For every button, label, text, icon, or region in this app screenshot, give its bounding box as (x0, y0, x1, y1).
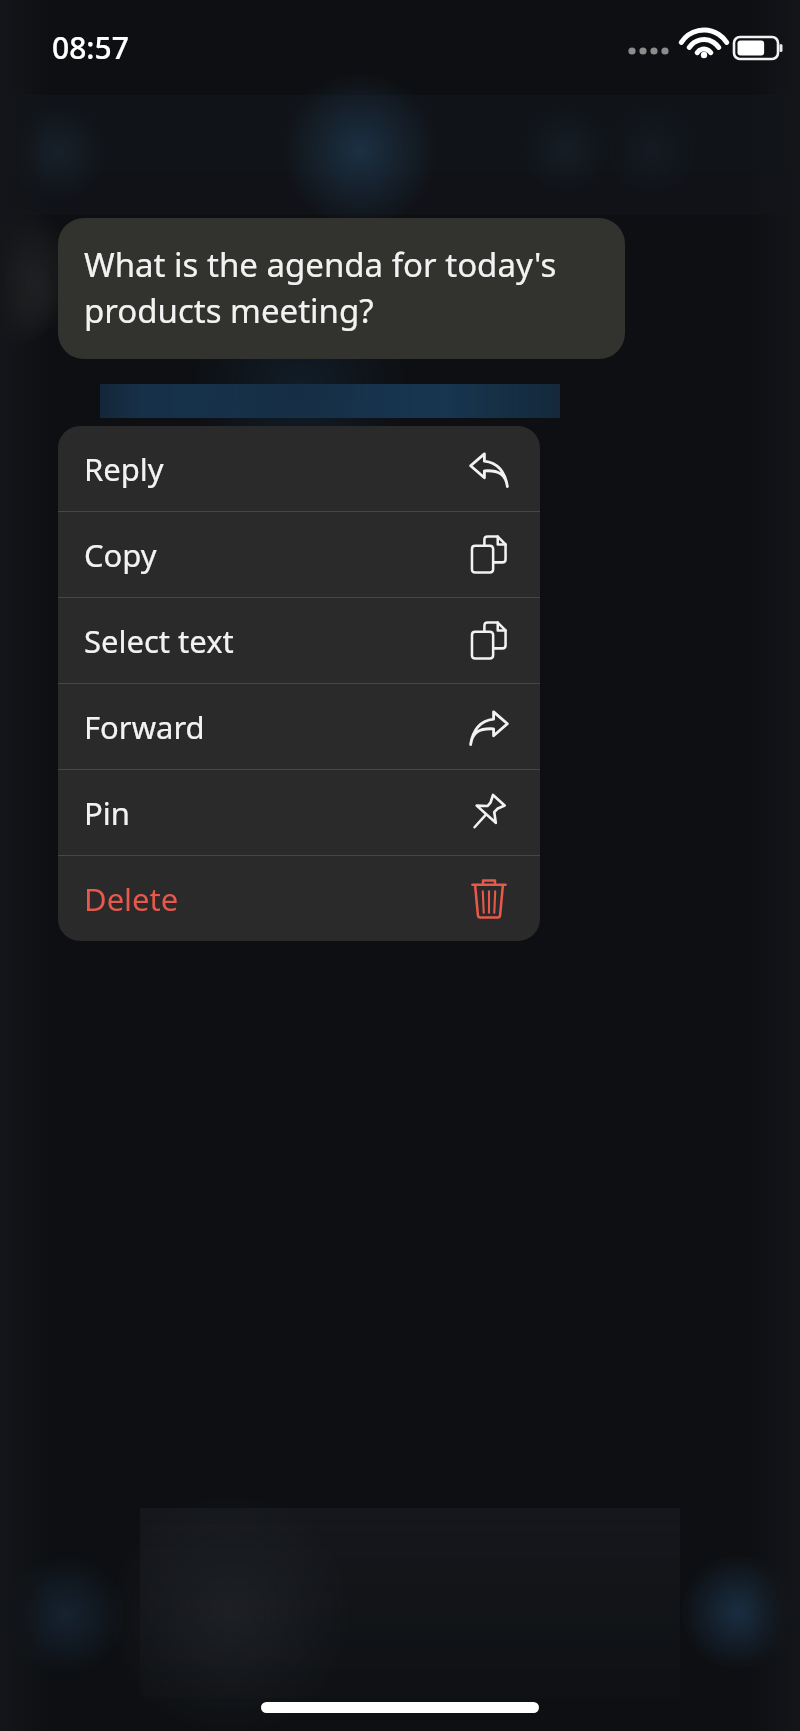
staticText: Delete (84, 878, 466, 920)
staticText: Reply (84, 448, 466, 490)
button[interactable]: Copy (58, 512, 540, 597)
button[interactable]: Forward (58, 684, 540, 769)
staticText: 08:57 (52, 27, 129, 68)
button[interactable]: What is the agenda for today's products … (58, 218, 625, 359)
staticText: Copy (84, 534, 466, 576)
button[interactable]: Reply (58, 426, 540, 511)
button[interactable]: Select text (58, 598, 540, 683)
button[interactable]: Delete (58, 856, 540, 941)
staticText: What is the agenda for today's products … (84, 242, 557, 333)
button[interactable]: Pin (58, 770, 540, 855)
staticText: Select text (84, 620, 466, 662)
staticText: Forward (84, 706, 466, 748)
staticText: Pin (84, 792, 466, 834)
